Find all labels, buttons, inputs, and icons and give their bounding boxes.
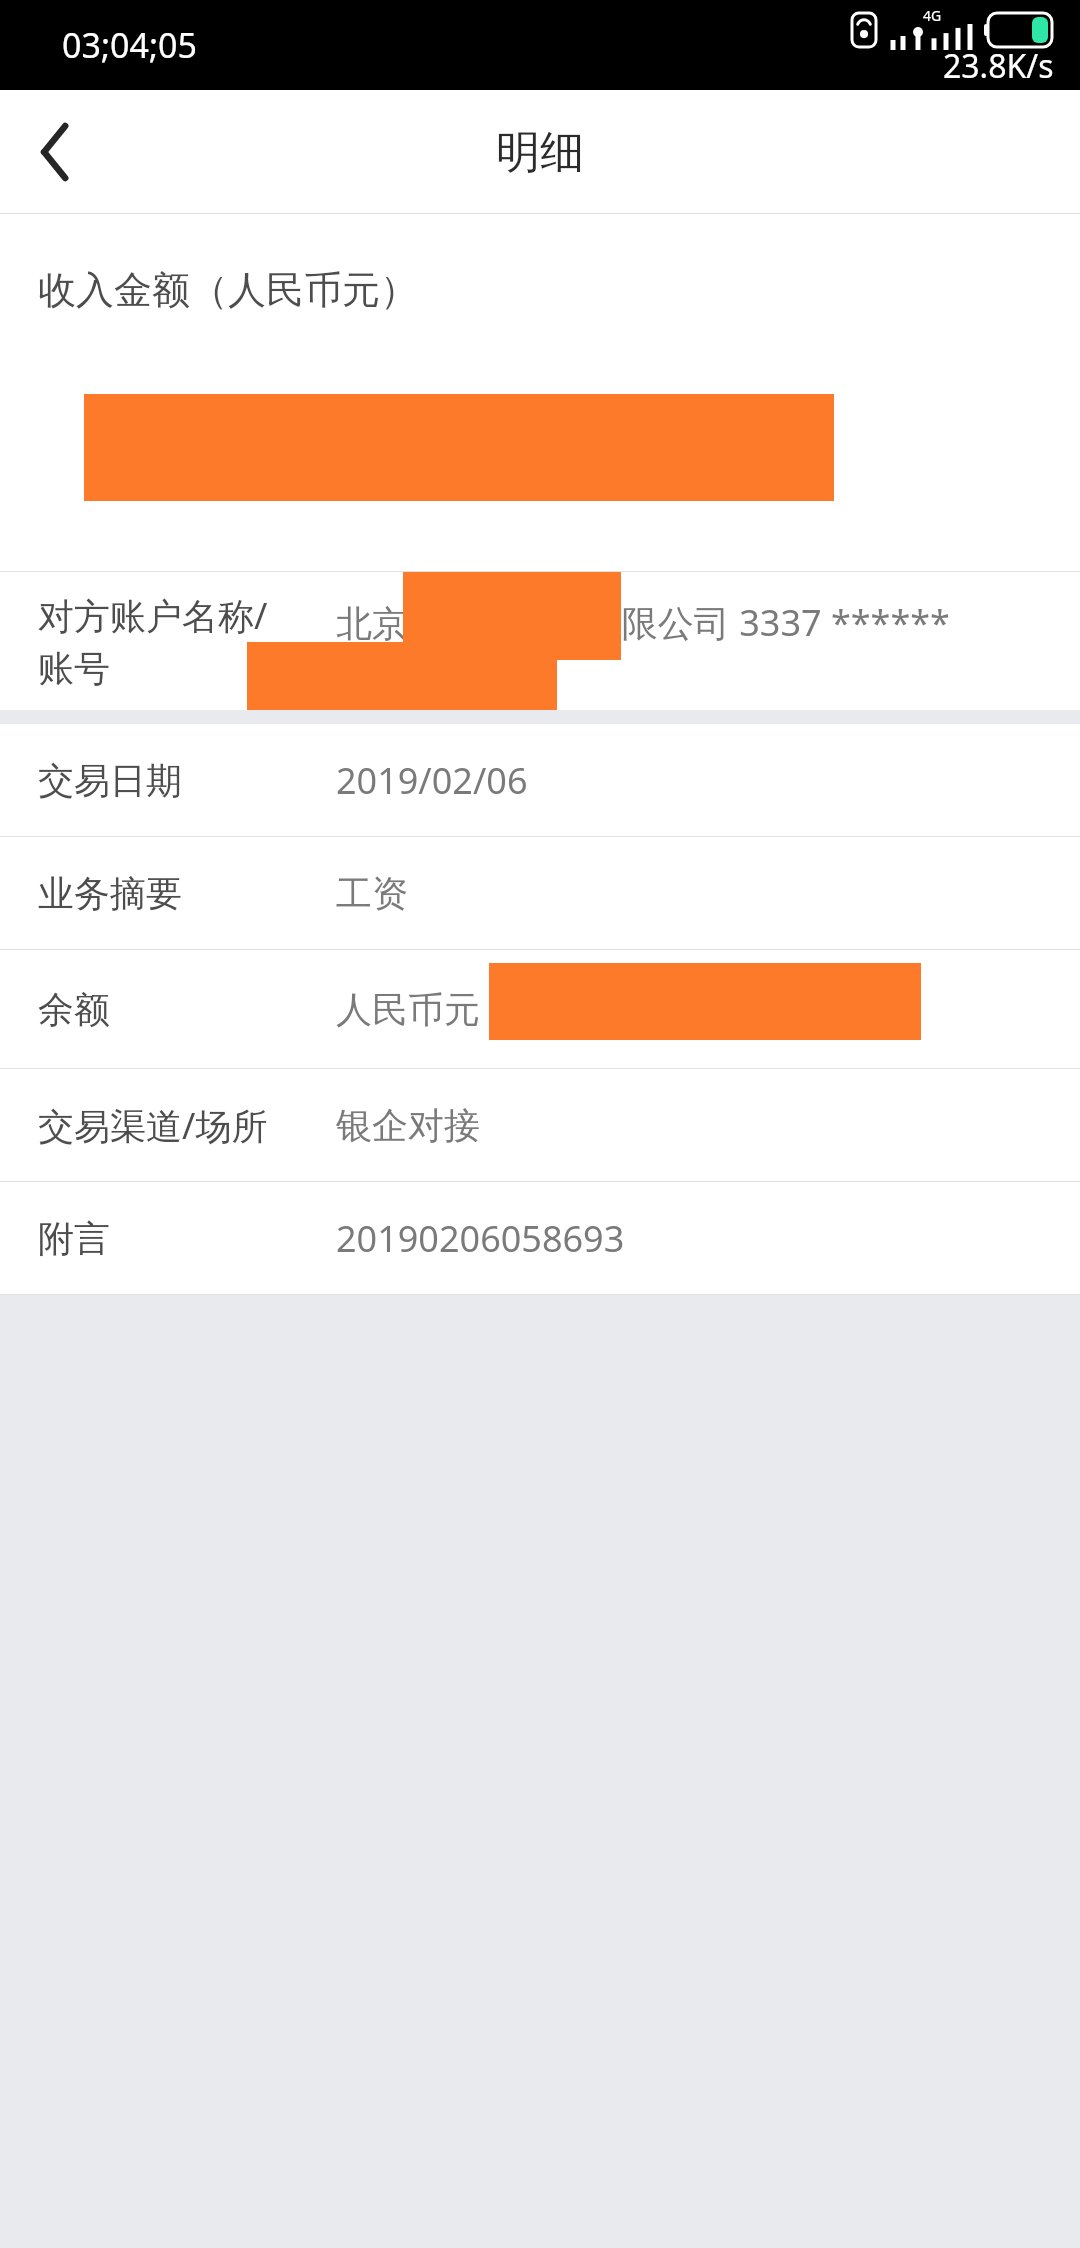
button[interactable]: 交易渠道/场所: [0, 1069, 1080, 1181]
staticText: 附言: [38, 1216, 110, 1261]
staticText: 23.8K/s: [943, 44, 1054, 88]
staticText: 20190206058693: [336, 1214, 625, 1263]
button[interactable]: 交易日期: [0, 724, 1080, 836]
staticText: 交易日期: [38, 758, 182, 803]
staticText: 对方账户名称/: [38, 591, 268, 640]
staticText: 2019/02/06: [336, 756, 528, 805]
staticText: 交易渠道/场所: [38, 1101, 268, 1150]
staticText: 明细: [496, 125, 584, 180]
button[interactable]: 附言: [0, 1182, 1080, 1294]
staticText: 北京 有限公司 3337 ******: [336, 598, 950, 647]
staticText: 人民币元: [336, 987, 480, 1032]
staticText: 银企对接: [336, 1103, 480, 1148]
staticText: 03;04;05: [62, 22, 197, 68]
button[interactable]: 业务摘要: [0, 837, 1080, 949]
staticText: 收入金额（人民币元）: [38, 266, 418, 314]
staticText: 4G: [923, 6, 942, 25]
staticText: 账号: [38, 646, 110, 691]
button[interactable]: Back: [0, 97, 110, 207]
staticText: 业务摘要: [38, 871, 182, 916]
staticText: 工资: [336, 871, 408, 916]
staticText: 余额: [38, 987, 110, 1032]
